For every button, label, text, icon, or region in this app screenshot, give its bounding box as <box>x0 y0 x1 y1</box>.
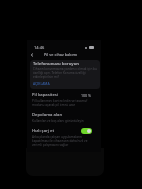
staticText: Pil ve cihaz bakımı <box>44 52 78 57</box>
staticText: 100 % <box>81 93 92 98</box>
staticText: Pil kullanımını kontrol edin ve tasarruf… <box>32 99 92 107</box>
staticText: Kullanılan ve boş alanı görüntüleyin <box>32 119 84 123</box>
staticText: Depolama alan <box>32 112 63 118</box>
button[interactable]: AÇIKLAMA <box>33 81 50 85</box>
button[interactable]: Pil kapasitesi <box>27 90 101 110</box>
staticText: 14:46 <box>34 45 45 50</box>
button[interactable]: Telefonunuzu koruyun <box>30 60 100 89</box>
staticText: Pil kapasitesi <box>32 92 58 98</box>
button[interactable]: Depolama alan <box>27 110 101 126</box>
staticText: Cihazın korunmasına yardımcı olmak için … <box>33 67 98 79</box>
staticText: Arka planda çalışan uygulamaların kapatı… <box>32 135 92 147</box>
staticText: Hızlı şarj et <box>32 128 55 134</box>
button[interactable]: Hızlı şarj et <box>27 126 101 150</box>
button[interactable]: Back <box>27 50 36 59</box>
staticText: Telefonunuzu koruyun <box>33 61 79 67</box>
